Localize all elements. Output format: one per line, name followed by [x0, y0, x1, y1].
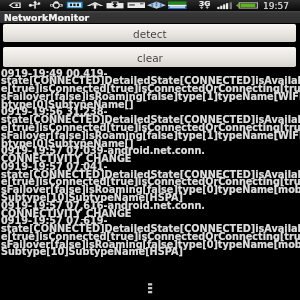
staticText: CONNECTIVITY_CHANGE	[1, 153, 132, 164]
staticText: btype[0]SubtypeName[]	[1, 138, 134, 149]
staticText: 3G	[199, 0, 211, 8]
staticText: e[true]isConnected[true]isConnectedOrCon…	[1, 83, 300, 94]
staticText: btype[0]SubtypeName[]	[1, 99, 134, 110]
staticText: Subtype[10]SubtypeName[HSPA]	[1, 246, 183, 257]
staticText: 0919-19:57 07,039-android.net.conn.	[1, 145, 205, 156]
button[interactable]: clear	[3, 47, 296, 67]
staticText: 0919-19:56 31,238-	[1, 106, 108, 117]
staticText: detect	[133, 28, 167, 40]
staticText: sFailover[false]isRoaming[false]type[1]t…	[1, 130, 300, 141]
staticText: e[true]isConnected[true]isConnectedOrCon…	[1, 176, 300, 187]
button[interactable]: detect	[3, 24, 296, 42]
staticText: CONNECTIVITY_CHANGE	[1, 208, 132, 219]
staticText: sFailover[false]isRoaming[false]type[0]t…	[1, 184, 300, 195]
staticText: 0919-19:57 07,041-	[1, 161, 108, 172]
staticText: state[CONNECTED]DetailedState[CONNECTED]…	[1, 169, 300, 180]
staticText: sFailover[false]isRoaming[false]type[1]t…	[1, 91, 300, 102]
staticText: 0919-19:57 07,619-	[1, 215, 108, 226]
staticText: e[true]isConnected[true]isConnectedOrCon…	[1, 231, 300, 242]
staticText: state[CONNECTED]DetailedState[CONNECTED]…	[1, 223, 300, 234]
staticText: state[CONNECTED]DetailedState[CONNECTED]…	[1, 114, 300, 125]
staticText: state[CONNECTED]DetailedState[CONNECTED]…	[1, 75, 300, 86]
staticText: e[true]isConnected[true]isConnectedOrCon…	[1, 122, 300, 133]
staticText: NetworkMonitor	[4, 12, 90, 23]
button[interactable]: More options	[138, 275, 162, 297]
staticText: 0919-19:49 00,419-	[1, 68, 108, 79]
staticText: clear	[137, 52, 163, 64]
staticText: 0919-19:57 07,616-android.net.conn.	[1, 200, 205, 211]
staticText: 19:57	[263, 1, 289, 11]
staticText: Subtype[10]SubtypeName[HSPA]	[1, 192, 183, 203]
staticText: sFailover[false]isRoaming[false]type[0]t…	[1, 239, 300, 250]
